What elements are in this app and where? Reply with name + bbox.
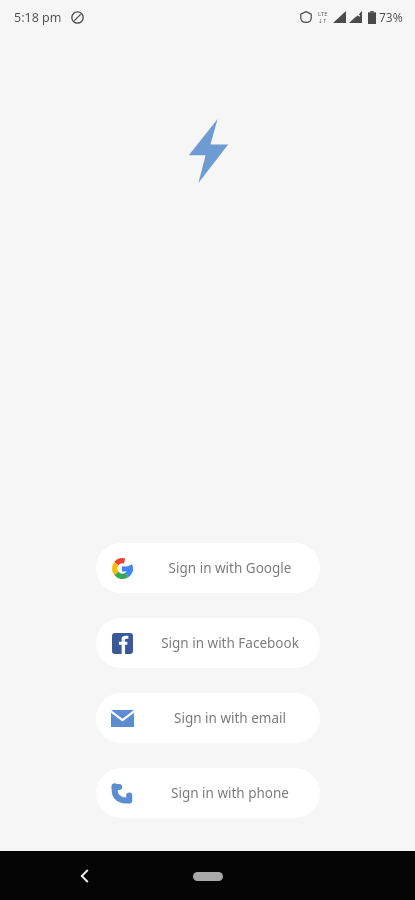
staticText: Sign in with phone: [148, 784, 312, 802]
button[interactable]: Sign in with email: [96, 693, 320, 743]
button[interactable]: Home: [180, 861, 236, 891]
staticText: ↓↑: [318, 18, 328, 24]
staticText: Sign in with email: [148, 709, 312, 727]
staticText: 5:18 pm: [14, 9, 62, 26]
staticText: Sign in with Facebook: [148, 634, 312, 652]
button[interactable]: Sign in with Google: [96, 543, 320, 593]
button[interactable]: Back: [64, 855, 106, 897]
staticText: Sign in with Google: [148, 559, 312, 577]
staticText: 73%: [379, 9, 403, 25]
button[interactable]: Sign in with Facebook: [96, 618, 320, 668]
button[interactable]: Sign in with phone: [96, 768, 320, 818]
staticText: LTE: [318, 10, 328, 18]
